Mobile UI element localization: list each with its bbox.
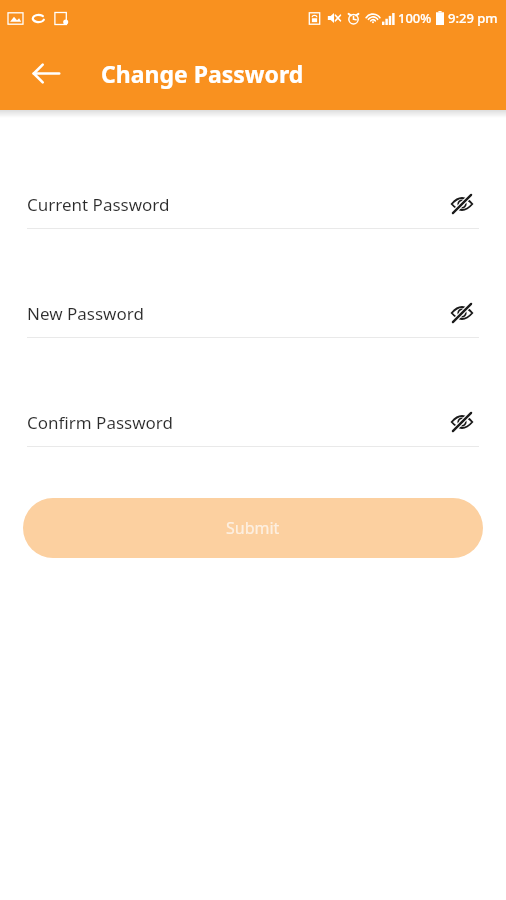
button[interactable]: Show password — [445, 296, 479, 330]
staticText: Current Password — [27, 193, 445, 216]
staticText: Change Password — [101, 58, 304, 89]
button[interactable]: Show password — [445, 187, 479, 221]
staticText: Submit — [226, 517, 280, 539]
staticText: 100% — [398, 9, 432, 27]
button[interactable]: Submit — [23, 498, 483, 558]
staticText: Confirm Password — [27, 411, 445, 434]
staticText: New Password — [27, 302, 445, 325]
staticText: 9:29 pm — [448, 9, 498, 27]
button[interactable]: Show password — [445, 405, 479, 439]
button[interactable]: Back — [22, 49, 70, 97]
